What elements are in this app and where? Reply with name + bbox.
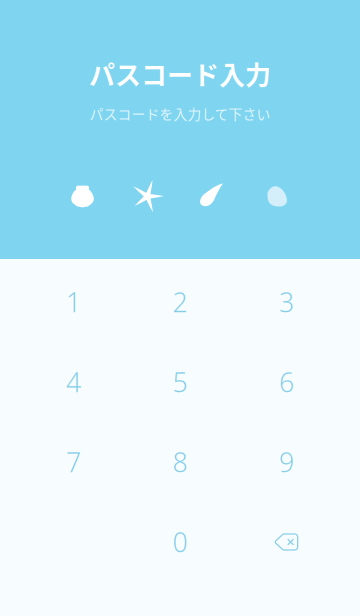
button[interactable]: 4 (20, 342, 127, 422)
staticText: パスコード入力 (89, 55, 271, 92)
button[interactable]: Delete (233, 502, 340, 582)
staticText: パスコードを入力して下さい (89, 103, 270, 123)
staticText: 0 (172, 524, 187, 560)
button[interactable]: 3 (233, 262, 340, 342)
staticText: 5 (172, 364, 187, 400)
button[interactable]: 6 (233, 342, 340, 422)
button[interactable]: 8 (127, 422, 233, 502)
staticText: 9 (279, 444, 294, 480)
button[interactable]: 5 (127, 342, 233, 422)
button[interactable]: 7 (20, 422, 127, 502)
button[interactable]: 1 (20, 262, 127, 342)
button[interactable]: 0 (127, 502, 233, 582)
staticText: 2 (172, 284, 187, 320)
staticText: 3 (279, 284, 294, 320)
button[interactable]: 2 (127, 262, 233, 342)
staticText: 8 (172, 444, 187, 480)
staticText: 4 (66, 364, 81, 400)
button[interactable]: 9 (233, 422, 340, 502)
staticText: 1 (66, 284, 81, 320)
staticText: 7 (66, 444, 81, 480)
staticText: 6 (279, 364, 294, 400)
